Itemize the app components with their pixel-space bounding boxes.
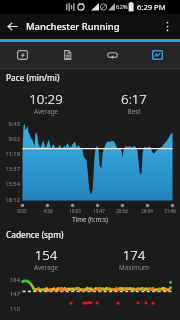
staticText: 11:19 [0, 150, 20, 158]
staticText: 154 [16, 246, 76, 264]
staticText: 4:58 [36, 208, 60, 214]
staticText: 0:00 [10, 208, 34, 214]
staticText: Pace (min/mi) [6, 72, 60, 83]
staticText: 13:37 [0, 165, 20, 173]
staticText: 15:54 [0, 180, 20, 188]
staticText: 174 [104, 246, 164, 264]
staticText: 10:29 [16, 90, 76, 108]
staticText: 10:03 [63, 208, 87, 214]
staticText: Manchester Running [26, 20, 120, 33]
staticText: 147 [0, 290, 20, 298]
button[interactable]: Charts [135, 42, 180, 68]
staticText: 20:56 [110, 208, 134, 214]
staticText: 184 [0, 276, 20, 284]
button[interactable]: Summary [0, 42, 45, 68]
staticText: 26:34 [135, 208, 159, 214]
staticText: 110 [0, 305, 20, 313]
staticText: Average [16, 263, 76, 272]
staticText: 6:29 PM [137, 2, 166, 12]
button[interactable]: Laps [90, 42, 135, 68]
staticText: 18:12 [0, 196, 20, 204]
staticText: Time (h:m:s) [55, 215, 125, 223]
staticText: Average [16, 107, 76, 116]
button[interactable]: Details [45, 42, 90, 68]
button[interactable]: More options [154, 14, 180, 39]
staticText: 31:46 [158, 208, 180, 214]
staticText: 6:45 [0, 120, 20, 128]
staticText: Best [104, 107, 164, 116]
staticText: Maximum [104, 263, 164, 272]
staticText: 9:02 [0, 135, 20, 143]
staticText: Cadence (spm) [6, 229, 64, 240]
button[interactable]: Navigate up [0, 14, 24, 39]
staticText: 6:17 [104, 90, 164, 108]
staticText: 15:47 [87, 208, 111, 214]
staticText: 62% [116, 3, 128, 11]
